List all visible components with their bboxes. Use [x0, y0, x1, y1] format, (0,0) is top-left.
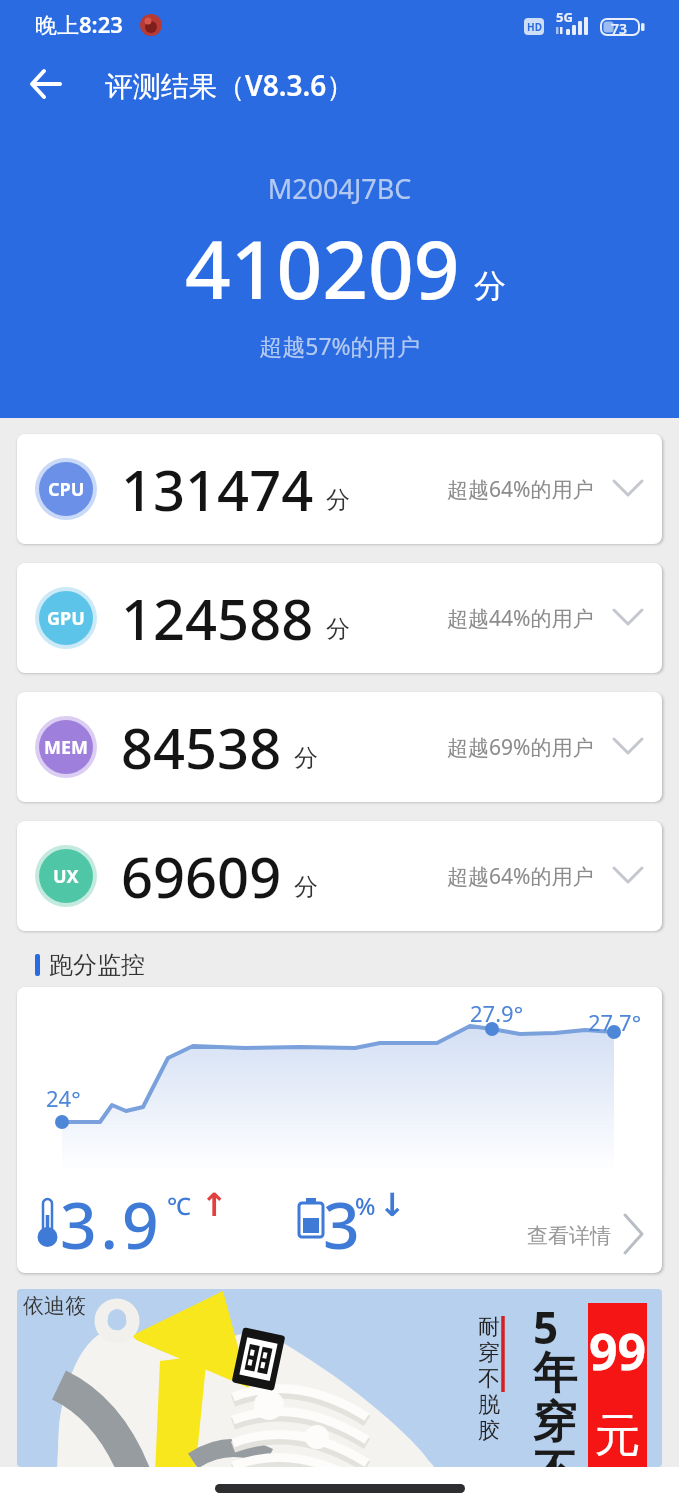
staticText: %: [355, 1189, 376, 1222]
staticText: 超越57%的用户: [0, 330, 679, 361]
staticText: HD: [527, 20, 542, 34]
button[interactable]: CPU: [17, 434, 662, 544]
staticText: 评测结果（V8.3.6）: [105, 66, 355, 104]
staticText: 5: [533, 1297, 559, 1357]
staticText: MEM: [44, 735, 89, 760]
staticText: ↑: [201, 1186, 228, 1223]
staticText: UX: [53, 864, 79, 889]
staticText: CPU: [48, 477, 85, 502]
staticText: 3.9: [60, 1181, 163, 1268]
button[interactable]: 依迪筱: [17, 1289, 662, 1467]
staticText: 分: [326, 485, 350, 515]
button[interactable]: UX: [17, 821, 662, 931]
staticText: 124588: [121, 580, 314, 656]
staticText: 不: [478, 1365, 500, 1393]
staticText: 胶: [478, 1417, 500, 1445]
staticText: 元: [588, 1407, 647, 1465]
staticText: 99: [588, 1317, 647, 1385]
staticText: 24°: [46, 1083, 81, 1113]
staticText: 131474: [121, 451, 314, 527]
staticText: 跑分监控: [49, 950, 145, 980]
button[interactable]: 查看详情: [527, 1213, 662, 1258]
staticText: 69609: [121, 838, 282, 914]
button[interactable]: GPU: [17, 563, 662, 673]
staticText: 超越44%的用户: [447, 604, 594, 633]
staticText: ↓: [379, 1186, 406, 1223]
staticText: 年: [533, 1346, 577, 1401]
staticText: 分: [326, 614, 350, 644]
staticText: 超越64%的用户: [447, 862, 594, 891]
staticText: ℃: [167, 1189, 191, 1222]
staticText: 73: [611, 19, 628, 38]
staticText: M2004J7BC: [0, 170, 679, 207]
staticText: 超越64%的用户: [447, 475, 594, 504]
staticText: 3: [323, 1181, 360, 1268]
staticText: 84538: [121, 709, 282, 785]
button[interactable]: [15, 56, 77, 114]
staticText: 410209: [185, 213, 460, 322]
staticText: 不: [533, 1444, 577, 1467]
staticText: 分: [294, 743, 318, 773]
staticText: GPU: [47, 606, 85, 631]
staticText: 查看详情: [527, 1223, 611, 1249]
staticText: 穿: [478, 1339, 500, 1367]
staticText: 分: [294, 872, 318, 902]
staticText: 超越69%的用户: [447, 733, 594, 762]
button[interactable]: MEM: [17, 692, 662, 802]
staticText: 耐: [478, 1313, 500, 1341]
staticText: 穿: [533, 1395, 577, 1450]
staticText: 依迪筱: [23, 1293, 86, 1319]
staticText: 晚上8:23: [35, 9, 123, 39]
staticText: 27.7°: [588, 1007, 642, 1037]
staticText: 27.9°: [470, 998, 524, 1028]
staticText: 5G: [556, 8, 573, 26]
staticText: 脱: [478, 1391, 500, 1419]
staticText: 分: [474, 266, 506, 306]
